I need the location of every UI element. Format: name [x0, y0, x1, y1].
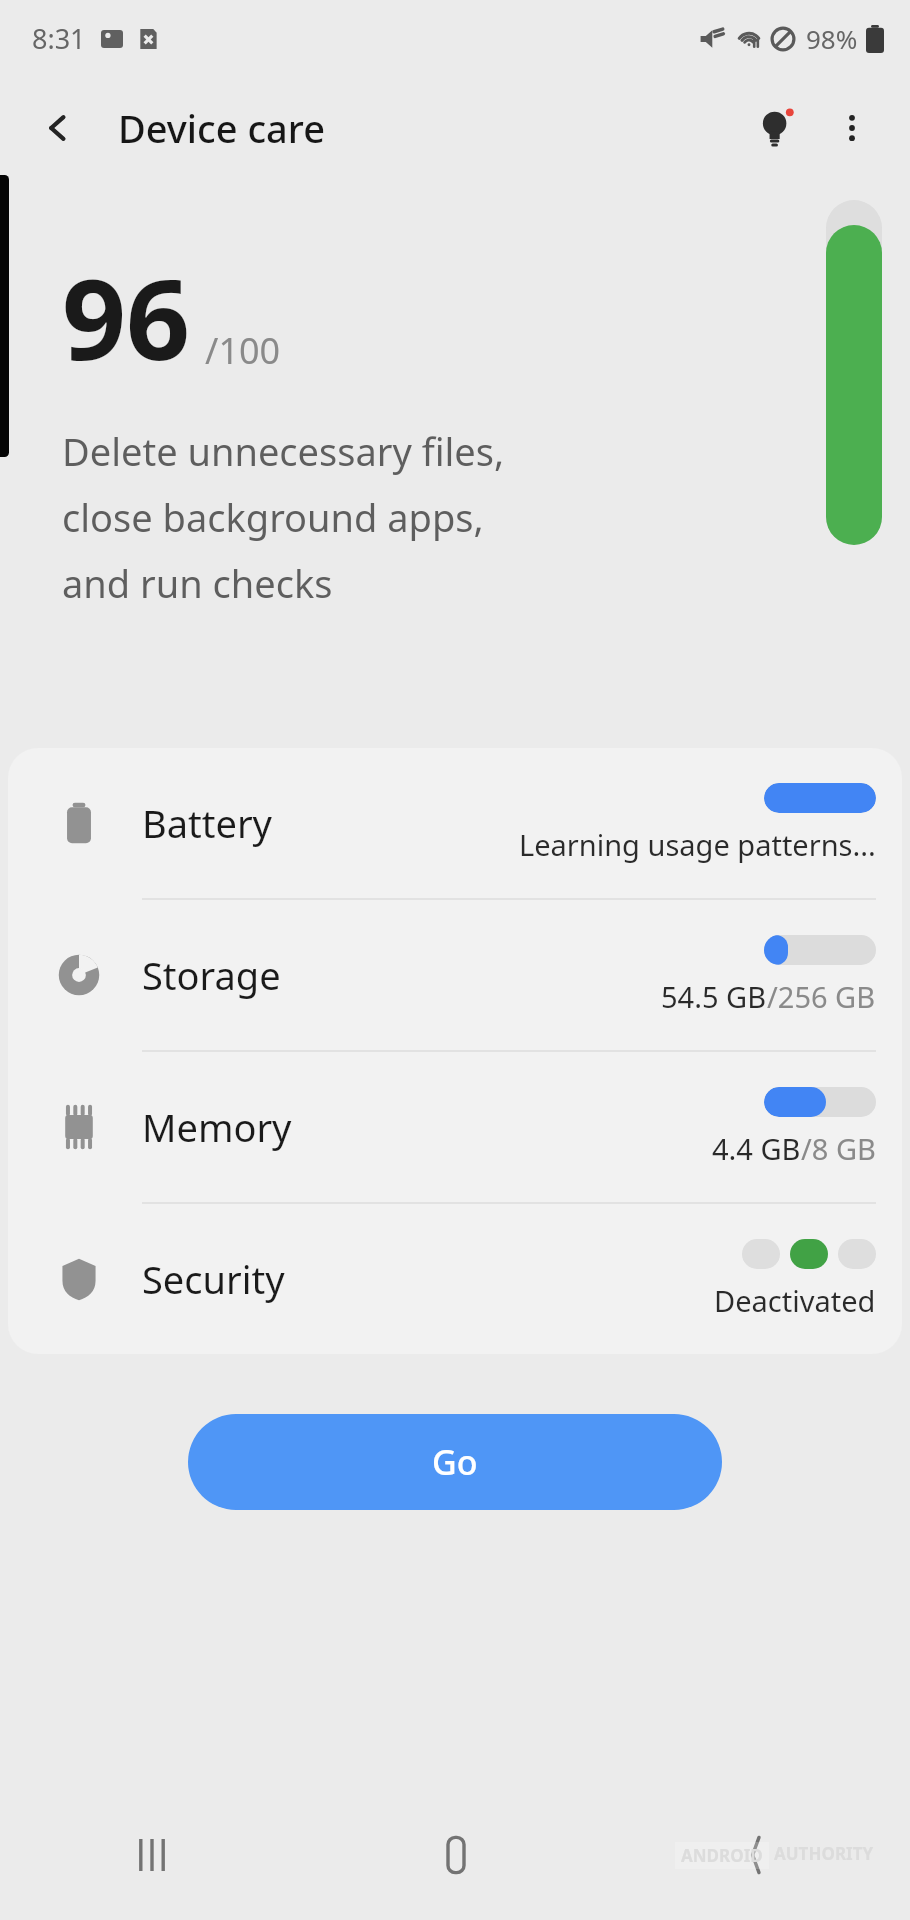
button[interactable]: Home	[304, 1790, 607, 1920]
staticText: Storage	[142, 949, 281, 1001]
staticText: Deactivated	[714, 1281, 876, 1320]
staticText: Battery	[142, 797, 272, 849]
button[interactable]: Back	[607, 1790, 910, 1920]
staticText: and run checks	[62, 557, 333, 600]
staticText: /8 GB	[801, 1129, 876, 1168]
staticText: /100	[205, 326, 281, 375]
staticText: AUTHORITY	[774, 1842, 874, 1865]
staticText: ANDROID	[681, 1844, 763, 1867]
staticText: 98%	[806, 21, 858, 56]
staticText: Memory	[142, 1101, 292, 1153]
button[interactable]: Back	[20, 90, 96, 166]
staticText: Learning usage patterns...	[519, 825, 876, 864]
button[interactable]: Tips	[738, 90, 814, 166]
button[interactable]: Go	[188, 1414, 722, 1510]
button[interactable]: More options	[814, 90, 890, 166]
staticText: Go	[432, 1439, 478, 1485]
button[interactable]: Storage	[8, 900, 902, 1050]
staticText: Device care	[118, 102, 325, 154]
staticText: 96	[62, 240, 191, 393]
staticText: Security	[142, 1253, 285, 1305]
staticText: 4.4 GB	[712, 1129, 801, 1168]
staticText: Delete unnecessary files,	[62, 425, 505, 477]
staticText: /256 GB	[767, 977, 876, 1016]
staticText: 8:31	[32, 20, 86, 57]
staticText: close background apps,	[62, 491, 484, 543]
button[interactable]: Battery	[8, 748, 902, 898]
button[interactable]: Memory	[8, 1052, 902, 1202]
button[interactable]: Recents	[0, 1790, 304, 1920]
button[interactable]: Security	[8, 1204, 902, 1354]
staticText: 54.5 GB	[661, 977, 767, 1016]
